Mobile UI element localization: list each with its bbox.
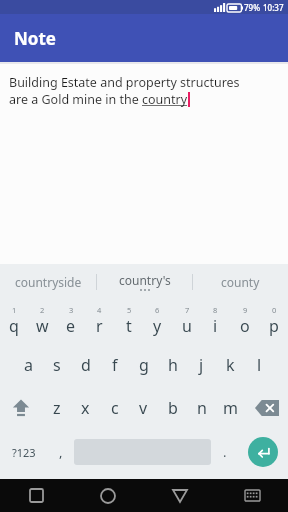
staticText: country <box>142 91 188 108</box>
staticText: 1 <box>12 305 17 315</box>
staticText: countryside <box>15 274 82 290</box>
button[interactable]: z <box>42 387 71 429</box>
button[interactable]: 8 <box>201 299 230 343</box>
staticText: x <box>81 397 90 419</box>
staticText: 4 <box>97 305 102 315</box>
button[interactable]: 2 <box>28 299 56 343</box>
button[interactable]: l <box>245 343 274 387</box>
button[interactable]: Shift <box>0 387 42 429</box>
staticText: l <box>257 354 262 376</box>
staticText: 9 <box>243 305 248 315</box>
staticText: q <box>9 315 19 337</box>
button[interactable]: 6 <box>143 299 172 343</box>
staticText: 3 <box>69 305 74 315</box>
staticText: ?123 <box>12 445 36 460</box>
button[interactable]: county <box>193 264 288 299</box>
button[interactable]: 5 <box>114 299 143 343</box>
button[interactable]: k <box>216 343 245 387</box>
staticText: f <box>112 354 118 376</box>
button[interactable]: a <box>14 343 42 387</box>
button[interactable]: countryside <box>0 264 96 299</box>
staticText: , <box>59 443 63 461</box>
staticText: y <box>153 315 162 337</box>
button[interactable]: 4 <box>85 299 114 343</box>
staticText: n <box>197 397 207 419</box>
staticText: e <box>66 315 76 337</box>
staticText: i <box>213 315 218 337</box>
button[interactable]: 7 <box>172 299 201 343</box>
button[interactable]: n <box>187 387 216 429</box>
staticText: b <box>168 397 178 419</box>
staticText: Building Estate and property structures <box>9 74 240 91</box>
button[interactable]: m <box>216 387 245 429</box>
staticText: 7 <box>185 305 190 315</box>
button[interactable]: ?123 <box>0 429 47 475</box>
staticText: 0 <box>272 305 277 315</box>
button[interactable]: j <box>187 343 216 387</box>
staticText: w <box>36 315 49 337</box>
staticText: d <box>81 354 91 376</box>
button[interactable]: , <box>47 429 74 475</box>
staticText: k <box>226 354 235 376</box>
button[interactable]: 9 <box>230 299 259 343</box>
staticText: o <box>240 315 250 337</box>
button[interactable]: country's <box>119 272 171 288</box>
staticText: Note <box>14 27 56 50</box>
staticText: z <box>53 397 61 419</box>
staticText: 5 <box>127 305 132 315</box>
button[interactable]: Recents <box>0 479 72 512</box>
button[interactable]: x <box>71 387 100 429</box>
staticText: h <box>168 354 178 376</box>
button[interactable]: f <box>100 343 129 387</box>
button[interactable]: Home <box>72 479 144 512</box>
button[interactable]: 1 <box>0 299 28 343</box>
button[interactable]: Backspace <box>245 387 288 429</box>
staticText: r <box>96 315 103 337</box>
button[interactable]: v <box>129 387 158 429</box>
button[interactable]: . <box>211 429 238 475</box>
staticText: v <box>139 397 148 419</box>
staticText: 79% <box>244 2 260 13</box>
button[interactable]: d <box>71 343 100 387</box>
button[interactable]: Enter <box>248 437 278 467</box>
staticText: j <box>199 354 204 376</box>
button[interactable]: s <box>42 343 71 387</box>
staticText: county <box>221 274 260 290</box>
button[interactable]: h <box>158 343 187 387</box>
staticText: are a Gold mine in the <box>9 91 142 108</box>
button[interactable]: 3 <box>56 299 85 343</box>
button[interactable]: g <box>129 343 158 387</box>
staticText: p <box>269 315 279 337</box>
button[interactable]: Back <box>144 479 216 512</box>
staticText: g <box>139 354 149 376</box>
staticText: s <box>53 354 61 376</box>
button[interactable]: c <box>100 387 129 429</box>
button[interactable]: 0 <box>259 299 288 343</box>
staticText: m <box>223 397 238 419</box>
staticText: . <box>223 443 227 461</box>
staticText: t <box>126 315 132 337</box>
staticText: 8 <box>213 305 218 315</box>
staticText: u <box>182 315 192 337</box>
staticText: 10:37 <box>263 2 284 13</box>
button[interactable]: Hide keyboard <box>216 479 288 512</box>
staticText: a <box>24 354 33 376</box>
staticText: 6 <box>155 305 160 315</box>
button[interactable]: b <box>158 387 187 429</box>
staticText: 2 <box>40 305 45 315</box>
staticText: c <box>111 397 119 419</box>
